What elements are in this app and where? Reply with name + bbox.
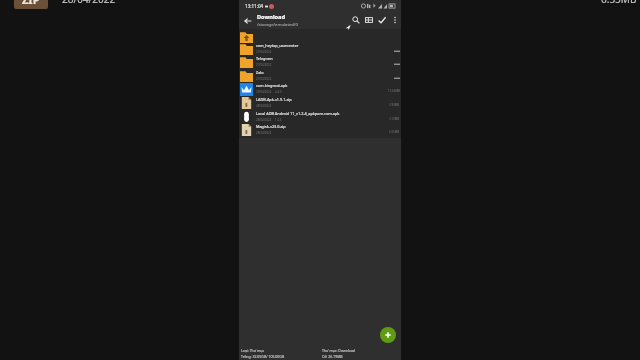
- button[interactable]: More options: [388, 12, 401, 28]
- staticText: Trống: 32.05GB/ 105.00GB: [241, 354, 285, 359]
- button[interactable]: Magisk-v23.0.zip: [239, 124, 401, 138]
- staticText: com.kingroot.apk: [256, 83, 288, 88]
- staticText: 27/04/2022: [256, 77, 272, 81]
- staticText: Thư mục: Download: [322, 348, 355, 353]
- staticText: ZIP: [22, 0, 40, 7]
- button[interactable]: com_heytap_usercenter: [239, 43, 401, 57]
- staticText: 13.66MB: [388, 89, 400, 93]
- staticText: 28/04/2022: [256, 131, 272, 135]
- staticText: 6.55MB: [389, 130, 400, 134]
- staticText: Download: [257, 13, 285, 21]
- button[interactable]: com.kingroot.apk: [239, 83, 401, 97]
- button[interactable]: Add: [380, 327, 396, 343]
- staticText: 28/04/2022: [256, 118, 272, 122]
- staticText: 29/04/2022: [256, 90, 272, 94]
- staticText: 1.2.4: [275, 118, 282, 122]
- staticText: 6.55MB: [601, 0, 637, 6]
- staticText: 28/04/2022: [62, 0, 116, 6]
- button[interactable]: Local ADB Android 11_v1.2.4_apkpure.com.…: [239, 111, 401, 125]
- staticText: 27/04/2022: [256, 50, 272, 54]
- staticText: Local ADB Android 11_v1.2.4_apkpure.com.…: [256, 111, 340, 116]
- staticText: 27/04/2022: [256, 63, 272, 67]
- button[interactable]: Zalo: [239, 70, 401, 84]
- button[interactable]: Select all: [375, 12, 388, 28]
- staticText: 4.4.0: [275, 90, 282, 94]
- staticText: LADB-Apk-v1.9.1.zip: [256, 97, 292, 102]
- staticText: Loại: Thư mục: [241, 348, 265, 353]
- staticText: /storage/emulated/0: [257, 22, 298, 28]
- button[interactable]: [239, 31, 401, 44]
- button[interactable]: LADB-Apk-v1.9.1.zip: [239, 97, 401, 111]
- staticText: Telegram: [256, 56, 273, 61]
- staticText: Magisk-v23.0.zip: [256, 124, 286, 129]
- staticText: Zalo: [256, 70, 264, 75]
- button[interactable]: Telegram: [239, 56, 401, 70]
- staticText: 28/04/2022: [256, 104, 272, 108]
- staticText: 13:11:04: [245, 3, 264, 9]
- staticText: 3.93MB: [389, 103, 400, 107]
- staticText: 3.13MB: [389, 117, 400, 121]
- staticText: Cỡ: 26.79MB: [322, 354, 343, 359]
- staticText: com_heytap_usercenter: [256, 43, 299, 48]
- button[interactable]: Back: [241, 14, 254, 27]
- button[interactable]: Search: [349, 12, 362, 28]
- button[interactable]: View mode: [362, 12, 375, 28]
